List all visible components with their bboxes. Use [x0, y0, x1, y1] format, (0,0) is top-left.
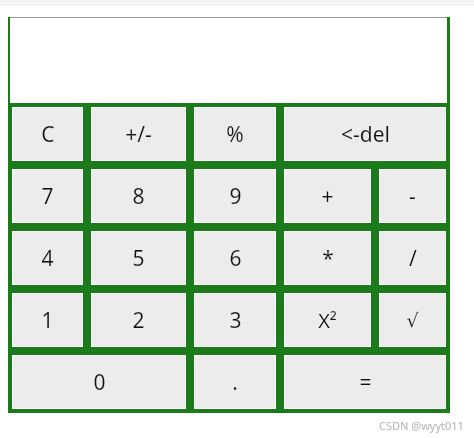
button[interactable] — [8, 17, 450, 103]
button[interactable]: 9 — [194, 169, 276, 223]
button[interactable]: . — [194, 355, 276, 409]
button[interactable]: 0 — [12, 355, 186, 409]
staticText: 0 — [93, 368, 106, 397]
staticText: 7 — [41, 182, 54, 211]
staticText: 4 — [41, 244, 54, 273]
staticText: 6 — [229, 244, 242, 273]
staticText: 5 — [132, 244, 145, 273]
staticText: = — [359, 368, 372, 397]
staticText: / — [409, 244, 417, 273]
staticText: 8 — [132, 182, 145, 211]
button[interactable]: 8 — [91, 169, 186, 223]
button[interactable]: * — [284, 231, 371, 285]
button[interactable]: 4 — [12, 231, 83, 285]
staticText: - — [409, 182, 416, 211]
button[interactable]: 3 — [194, 293, 276, 347]
button[interactable]: 1 — [12, 293, 83, 347]
staticText: +/- — [125, 120, 152, 149]
button[interactable]: 2 — [91, 293, 186, 347]
staticText: X² — [318, 307, 337, 334]
button[interactable]: - — [379, 169, 446, 223]
button[interactable]: + — [284, 169, 371, 223]
staticText: 3 — [229, 306, 242, 335]
staticText: * — [322, 244, 334, 273]
staticText: CSDN @wyyt011 — [379, 418, 464, 433]
staticText: + — [321, 182, 334, 211]
staticText: <-del — [341, 120, 390, 149]
staticText: C — [41, 120, 55, 149]
staticText: % — [226, 120, 244, 149]
staticText: 1 — [41, 306, 54, 335]
button[interactable]: = — [284, 355, 446, 409]
button[interactable]: 5 — [91, 231, 186, 285]
button[interactable]: √ — [379, 293, 446, 347]
button[interactable]: C — [12, 107, 83, 161]
staticText: . — [232, 368, 238, 397]
button[interactable]: 7 — [12, 169, 83, 223]
button[interactable]: / — [379, 231, 446, 285]
staticText: √ — [406, 309, 419, 331]
button[interactable]: +/- — [91, 107, 186, 161]
button[interactable]: X² — [284, 293, 371, 347]
staticText: 9 — [229, 182, 242, 211]
button[interactable]: <-del — [284, 107, 446, 161]
staticText: 2 — [132, 306, 145, 335]
button[interactable]: 6 — [194, 231, 276, 285]
button[interactable]: % — [194, 107, 276, 161]
